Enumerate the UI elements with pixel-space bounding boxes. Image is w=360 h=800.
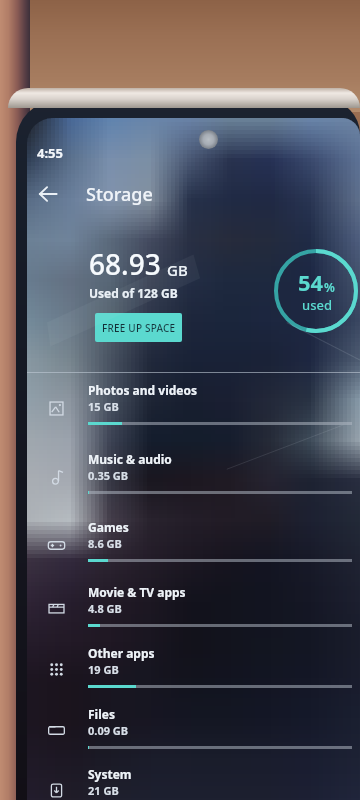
staticText: 0.09 GB — [88, 723, 129, 738]
staticText: 0.35 GB — [88, 468, 129, 483]
staticText: Other apps — [88, 645, 155, 661]
button[interactable]: Movie & TV apps — [27, 577, 360, 638]
button[interactable]: Back — [27, 173, 69, 215]
button[interactable]: Files — [27, 699, 360, 759]
staticText: Photos and videos — [88, 382, 198, 398]
staticText: 8.6 GB — [88, 536, 122, 551]
button[interactable]: System — [27, 759, 360, 800]
staticText: used — [302, 296, 332, 314]
staticText: FREE UP SPACE — [102, 321, 176, 335]
button[interactable]: Photos and videos — [27, 373, 360, 442]
button[interactable]: Games — [27, 511, 360, 577]
staticText: Used of 128 GB — [89, 285, 178, 301]
button[interactable]: Music & audio — [27, 442, 360, 511]
staticText: Movie & TV apps — [88, 584, 186, 600]
staticText: System — [88, 766, 132, 782]
staticText: 21 GB — [88, 783, 119, 798]
staticText: GB — [167, 260, 188, 280]
staticText: 54 — [298, 267, 324, 297]
staticText: Games — [88, 519, 129, 535]
staticText: 68.93 — [89, 245, 161, 283]
staticText: 4:55 — [37, 144, 63, 162]
staticText: 19 GB — [88, 662, 119, 677]
staticText: 4.8 GB — [88, 601, 122, 616]
button[interactable]: FREE UP SPACE — [95, 313, 182, 342]
button[interactable]: Other apps — [27, 638, 360, 699]
staticText: % — [324, 279, 335, 295]
staticText: 15 GB — [88, 399, 119, 414]
staticText: Storage — [86, 182, 153, 207]
staticText: Music & audio — [88, 451, 172, 467]
staticText: Files — [88, 706, 115, 722]
